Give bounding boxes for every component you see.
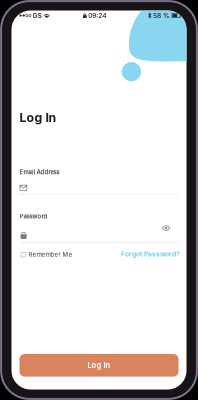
button[interactable]: Show password <box>162 225 170 231</box>
staticText: Forgot Password? <box>121 250 180 258</box>
staticText: 09:24 <box>88 11 106 20</box>
staticText: Log In <box>19 110 56 125</box>
staticText: GS <box>33 11 42 20</box>
staticText: Log In <box>87 361 110 370</box>
staticText: 58 % <box>153 11 170 20</box>
button[interactable]: Log In <box>19 354 178 377</box>
staticText: Remember Me <box>28 251 72 258</box>
button[interactable]: Remember Me <box>20 251 72 258</box>
staticText: Email Address <box>19 168 59 176</box>
staticText: Password <box>19 213 47 220</box>
button[interactable]: Forgot Password? <box>121 250 180 258</box>
